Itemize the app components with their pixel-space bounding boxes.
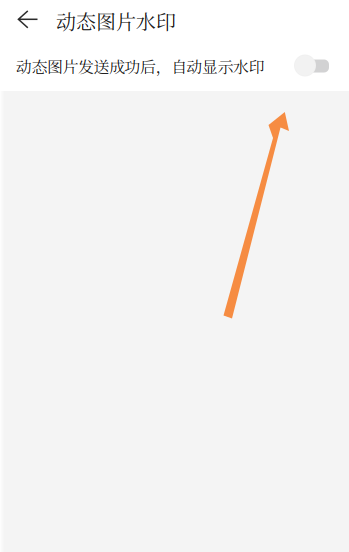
staticText: 动态图片水印 [56, 6, 176, 35]
staticText: 动态图片发送成功后，自动显示水印 [16, 54, 264, 77]
button[interactable]: Back [5, 0, 49, 41]
button[interactable]: 动态图片发送成功后，自动显示水印 [0, 41, 349, 91]
